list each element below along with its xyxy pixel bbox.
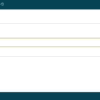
button[interactable]: Navigate up xyxy=(0,0,9,9)
